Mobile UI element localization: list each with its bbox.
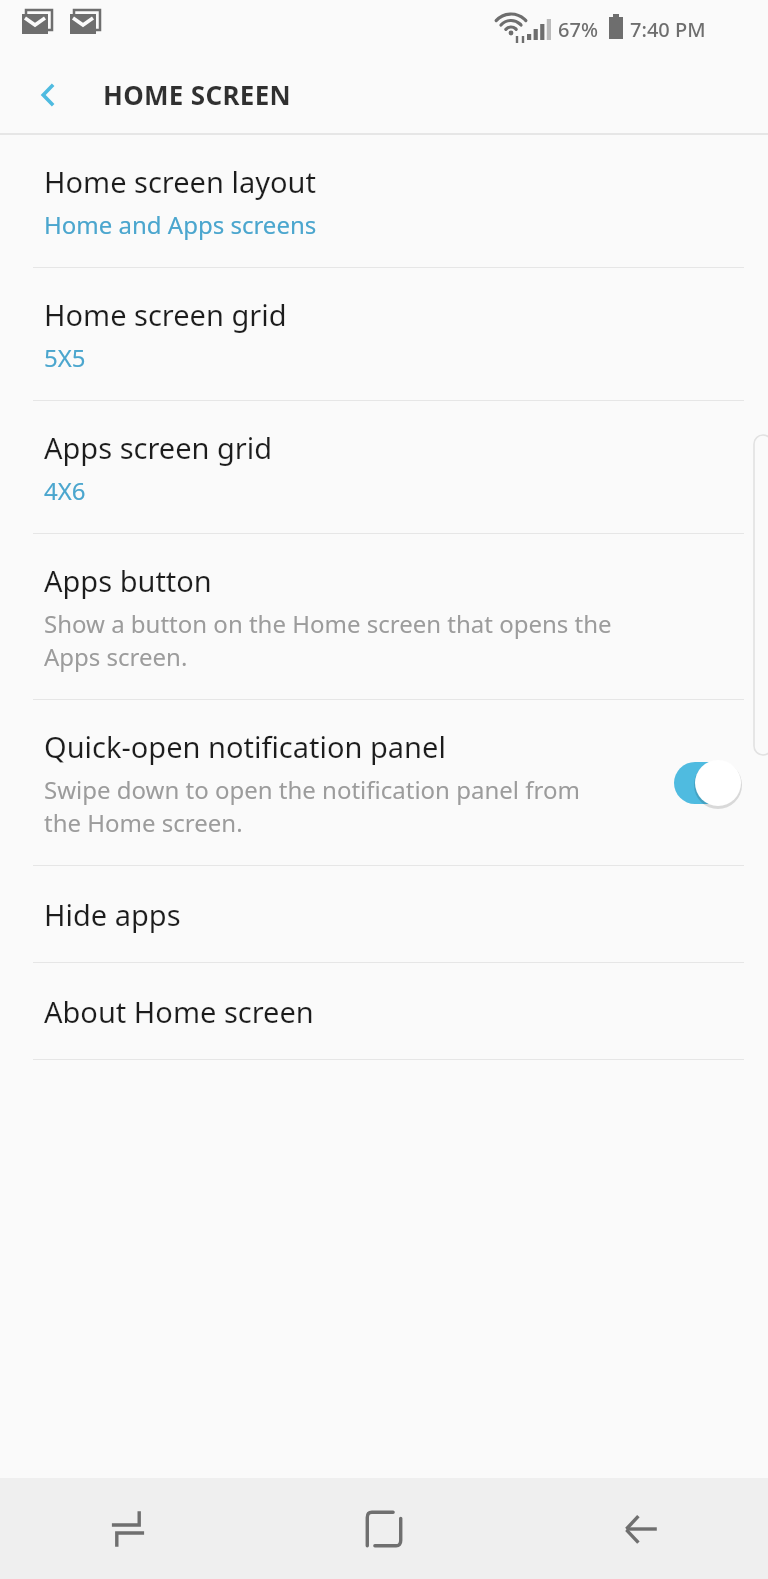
staticText: Show a button on the Home screen that op…: [44, 607, 612, 673]
staticText: Hide apps: [44, 895, 181, 934]
button[interactable]: Apps screen grid: [0, 401, 768, 533]
button[interactable]: Quick-open notification panel: [0, 700, 768, 865]
staticText: Quick-open notification panel: [44, 727, 446, 766]
button[interactable]: Recents: [0, 1478, 256, 1579]
staticText: 4X6: [44, 474, 86, 507]
button[interactable]: Hide apps: [0, 866, 768, 962]
staticText: 5X5: [44, 341, 86, 374]
button[interactable]: Home screen grid: [0, 268, 768, 400]
button[interactable]: Back: [24, 71, 72, 119]
staticText: Home screen layout: [44, 162, 316, 201]
staticText: Home screen grid: [44, 295, 287, 334]
staticText: HOME SCREEN: [103, 77, 291, 112]
button[interactable]: Home screen layout: [0, 135, 768, 267]
staticText: Swipe down to open the notification pane…: [44, 773, 580, 839]
staticText: Home and Apps screens: [44, 208, 317, 241]
staticText: Apps button: [44, 561, 212, 600]
staticText: 7:40 PM: [630, 16, 706, 43]
button[interactable]: About Home screen: [0, 963, 768, 1059]
staticText: 67%: [558, 16, 598, 43]
button[interactable]: Home: [256, 1478, 512, 1579]
button[interactable]: Apps button: [0, 534, 768, 699]
staticText: About Home screen: [44, 992, 314, 1031]
button[interactable]: Back: [512, 1478, 768, 1579]
staticText: Apps screen grid: [44, 428, 273, 467]
